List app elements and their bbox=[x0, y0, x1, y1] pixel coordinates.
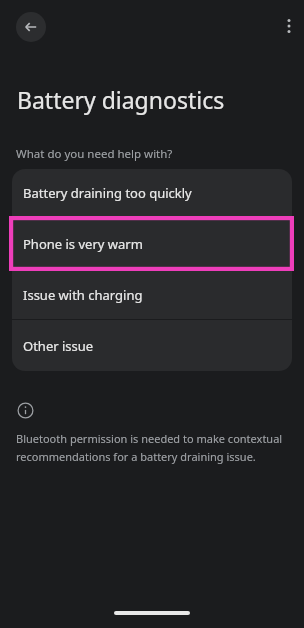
staticText: Battery diagnostics bbox=[17, 84, 225, 115]
button[interactable]: Issue with charging bbox=[12, 270, 292, 319]
button[interactable]: More options bbox=[275, 12, 303, 40]
staticText: Other issue bbox=[23, 337, 94, 355]
staticText: Bluetooth permission is needed to make c… bbox=[16, 431, 283, 446]
staticText: Issue with charging bbox=[23, 286, 143, 304]
button[interactable]: Other issue bbox=[12, 320, 292, 371]
button[interactable]: Back bbox=[16, 12, 46, 42]
button[interactable]: Battery draining too quickly bbox=[12, 169, 292, 217]
staticText: recommendations for a battery draining i… bbox=[16, 449, 256, 464]
staticText: Phone is very warm bbox=[23, 235, 143, 253]
staticText: What do you need help with? bbox=[16, 146, 173, 162]
staticText: Battery draining too quickly bbox=[23, 184, 192, 202]
button[interactable]: Phone is very warm bbox=[12, 218, 292, 269]
